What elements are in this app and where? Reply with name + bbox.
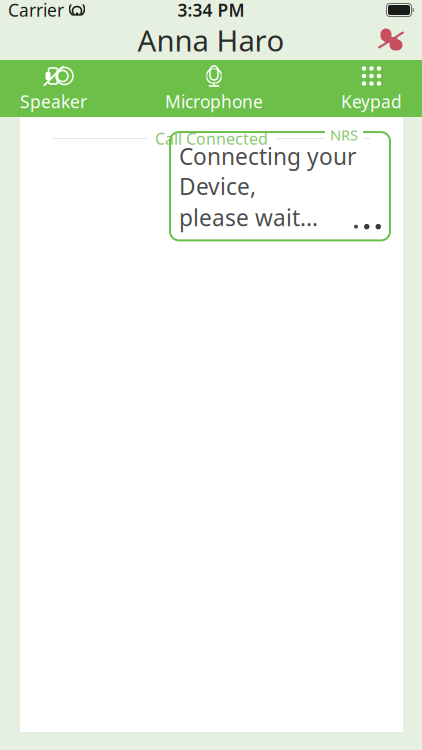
button[interactable]: Speaker <box>14 60 93 117</box>
staticText: Connecting your Device, <box>179 141 356 201</box>
staticText: please wait... <box>179 202 318 232</box>
staticText: 3:34 PM <box>177 0 244 21</box>
staticText: Carrier <box>8 0 64 21</box>
staticText: Call Connected <box>155 128 268 149</box>
staticText: Anna Haro <box>137 20 284 59</box>
button[interactable]: Microphone <box>159 60 269 117</box>
staticText: NRS <box>330 125 358 145</box>
button[interactable]: Keypad <box>335 60 408 117</box>
staticText: Microphone <box>165 90 263 113</box>
button[interactable]: End call <box>366 21 416 59</box>
staticText: Keypad <box>341 90 402 113</box>
staticText: Speaker <box>20 90 87 113</box>
